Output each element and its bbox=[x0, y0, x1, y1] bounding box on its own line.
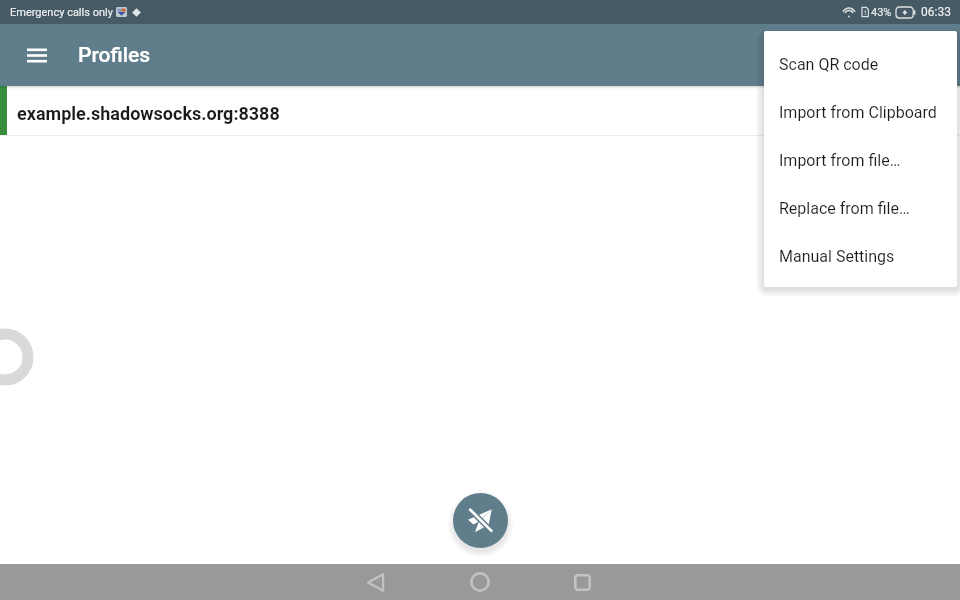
staticText: Profiles bbox=[78, 43, 151, 68]
staticText: Emergency calls only bbox=[10, 6, 113, 19]
staticText: Manual Settings bbox=[779, 247, 895, 266]
staticText: Import from Clipboard bbox=[779, 103, 937, 122]
staticText: Scan QR code bbox=[779, 55, 879, 74]
button[interactable]: Replace from file… bbox=[764, 184, 957, 232]
staticText: Replace from file… bbox=[779, 199, 910, 218]
button[interactable]: Import from file… bbox=[764, 136, 957, 184]
staticText: Import from file… bbox=[779, 151, 901, 170]
button[interactable]: Connect bbox=[453, 493, 508, 548]
button[interactable]: Open navigation drawer bbox=[13, 31, 61, 79]
button[interactable]: Recent apps bbox=[564, 564, 600, 600]
staticText: 06:33 bbox=[921, 5, 951, 19]
button[interactable]: Scan QR code bbox=[764, 40, 957, 88]
button[interactable]: Manual Settings bbox=[764, 232, 957, 280]
button[interactable]: example.shadowsocks.org:8388 bbox=[0, 86, 960, 136]
button[interactable]: Import from Clipboard bbox=[764, 88, 957, 136]
button[interactable]: Home bbox=[462, 564, 498, 600]
button[interactable]: Back bbox=[357, 564, 393, 600]
staticText: example.shadowsocks.org:8388 bbox=[17, 103, 280, 124]
staticText: 43% bbox=[871, 6, 892, 19]
